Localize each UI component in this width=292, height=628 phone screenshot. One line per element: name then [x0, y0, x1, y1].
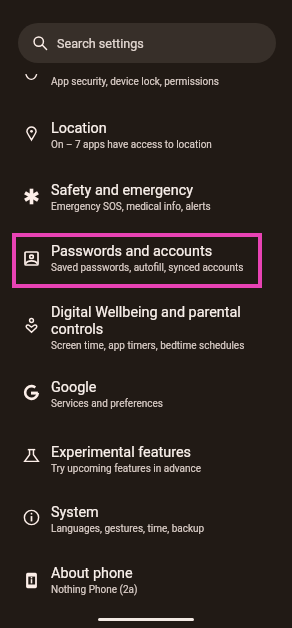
staticText: Safety and emergency: [51, 182, 247, 199]
staticText: Search settings: [57, 36, 144, 51]
button[interactable]: About phone: [0, 565, 292, 626]
staticText: Try upcoming features in advance: [51, 463, 202, 475]
button[interactable]: Search settings: [18, 23, 276, 63]
staticText: Emergency SOS, medical info, alerts: [51, 201, 211, 213]
staticText: Digital Wellbeing and parental controls: [51, 304, 247, 338]
button[interactable]: Security and privacy: [0, 52, 292, 90]
staticText: System: [51, 504, 247, 521]
staticText: Saved passwords, autofill, synced accoun…: [51, 262, 244, 274]
button[interactable]: Location: [0, 120, 292, 181]
button[interactable]: Passwords and accounts: [0, 243, 292, 304]
staticText: Services and preferences: [51, 398, 163, 410]
staticText: Location: [51, 120, 247, 137]
staticText: Passwords and accounts: [51, 243, 247, 260]
staticText: On – 7 apps have access to location: [51, 139, 212, 151]
staticText: Languages, gestures, time, backup: [51, 523, 205, 535]
button[interactable]: Google: [0, 379, 292, 440]
other: Security and privacy: [23, 68, 40, 85]
staticText: App security, device lock, permissions: [51, 76, 219, 88]
staticText: Nothing Phone (2a): [51, 584, 138, 596]
staticText: Experimental features: [51, 444, 247, 461]
staticText: Screen time, app timers, bedtime schedul…: [51, 340, 245, 352]
staticText: About phone: [51, 565, 247, 582]
button[interactable]: Digital Wellbeing and parental controls: [0, 304, 292, 378]
staticText: Google: [51, 379, 247, 396]
button[interactable]: Safety and emergency: [0, 182, 292, 243]
button[interactable]: System: [0, 504, 292, 565]
button[interactable]: Experimental features: [0, 444, 292, 505]
